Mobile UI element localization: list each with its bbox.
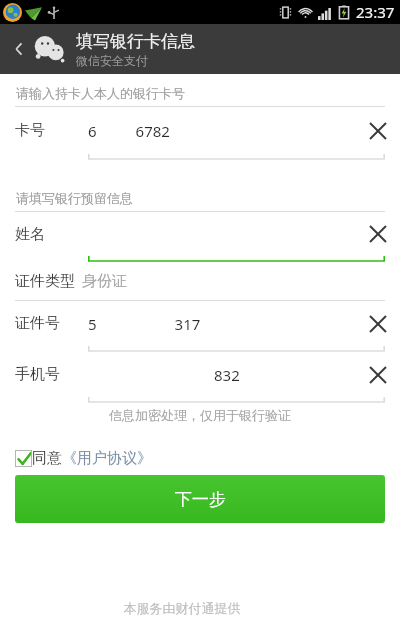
button[interactable]: 证件类型 <box>0 262 400 301</box>
button[interactable]: 手机号 <box>0 352 400 403</box>
button[interactable]: Clear <box>358 111 398 151</box>
button[interactable]: Clear <box>358 355 398 395</box>
button[interactable]: 同意 <box>15 449 152 468</box>
button[interactable]: 姓名 <box>0 212 400 262</box>
staticText: 832 <box>88 365 358 385</box>
staticText: 微信安全支付 <box>76 53 148 68</box>
staticText: 下一步 <box>175 489 226 510</box>
staticText: 手机号 <box>15 365 88 384</box>
staticText: 卡号 <box>15 121 88 140</box>
staticText: 证件号 <box>15 314 88 333</box>
button[interactable]: Clear <box>358 214 398 254</box>
other: Back <box>8 38 30 60</box>
staticText: 姓名 <box>15 225 88 244</box>
button[interactable]: 证件号 <box>0 301 400 352</box>
staticText: 身份证 <box>82 272 127 291</box>
staticText: 请填写银行预留信息 <box>16 190 133 206</box>
button[interactable]: Clear <box>358 304 398 344</box>
staticText: 信息加密处理，仅用于银行验证 <box>0 407 400 423</box>
staticText: 同意 <box>32 449 62 468</box>
staticText: 5 317 <box>88 314 358 334</box>
button[interactable]: Back <box>0 24 400 74</box>
staticText: 23:37 <box>356 2 395 22</box>
staticText: 本服务由财付通提供 <box>0 600 382 616</box>
staticText: 《用户协议》 <box>62 449 152 468</box>
button[interactable]: 下一步 <box>15 475 385 523</box>
staticText: 请输入持卡人本人的银行卡号 <box>16 85 185 101</box>
button[interactable]: 卡号 <box>0 107 400 160</box>
staticText: 证件类型 <box>15 272 75 291</box>
staticText: 填写银行卡信息 <box>76 31 195 52</box>
staticText: 6 6782 <box>88 121 358 141</box>
